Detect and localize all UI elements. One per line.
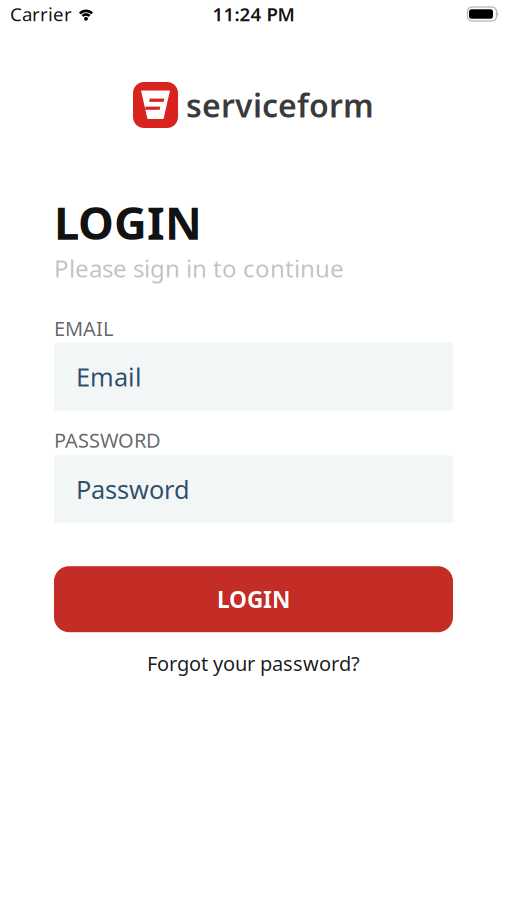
staticText: LOGIN — [217, 584, 290, 614]
staticText: PASSWORD — [54, 427, 161, 453]
staticText: Email — [76, 360, 142, 393]
staticText: Password — [76, 472, 190, 506]
staticText: LOGIN — [54, 192, 202, 252]
staticText: Please sign in to continue — [54, 252, 344, 284]
staticText: serviceform — [186, 84, 374, 126]
staticText: Carrier — [10, 2, 72, 26]
button[interactable]: LOGIN — [54, 566, 453, 632]
staticText: EMAIL — [54, 315, 113, 342]
staticText: Forgot your password? — [147, 650, 360, 676]
button[interactable]: Email — [54, 343, 453, 411]
button[interactable]: Password — [54, 455, 453, 523]
button[interactable]: Forgot your password? — [54, 641, 453, 685]
staticText: 11:24 PM — [212, 2, 294, 26]
